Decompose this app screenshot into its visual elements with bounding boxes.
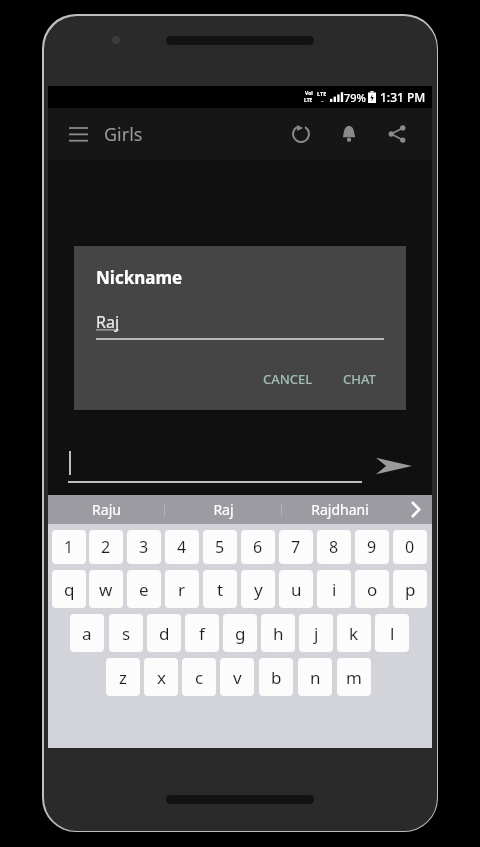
button[interactable]: CANCEL xyxy=(255,364,321,394)
button[interactable]: Raj xyxy=(165,495,281,524)
staticText: .. xyxy=(321,97,324,104)
staticText: Rajdhani xyxy=(311,500,369,519)
staticText: 1 xyxy=(64,536,74,558)
button[interactable]: Share xyxy=(378,115,416,153)
button[interactable]: y xyxy=(241,570,275,608)
button[interactable]: v xyxy=(220,658,254,696)
staticText: 1:31 PM xyxy=(380,89,426,105)
button[interactable]: b xyxy=(259,658,293,696)
button[interactable]: 3 xyxy=(127,530,161,564)
staticText: h xyxy=(273,622,284,645)
staticText: 0 xyxy=(405,536,415,558)
button[interactable]: p xyxy=(393,570,427,608)
staticText: 79% xyxy=(344,90,366,105)
button[interactable]: k xyxy=(337,614,371,652)
button[interactable]: x xyxy=(144,658,178,696)
staticText: Raj xyxy=(96,311,120,333)
button[interactable]: f xyxy=(185,614,219,652)
staticText: c xyxy=(195,666,204,689)
button[interactable]: Rajdhani xyxy=(282,495,398,524)
staticText: m xyxy=(346,666,362,689)
button[interactable]: Send xyxy=(372,449,416,483)
staticText: 6 xyxy=(253,536,263,558)
staticText: e xyxy=(139,578,149,601)
button[interactable]: e xyxy=(127,570,161,608)
button[interactable]: Notifications xyxy=(330,115,368,153)
button[interactable]: More suggestions xyxy=(398,495,432,524)
button[interactable]: d xyxy=(147,614,181,652)
button[interactable]: 4 xyxy=(165,530,199,564)
staticText: 4 xyxy=(177,536,187,558)
staticText: Girls xyxy=(104,122,143,147)
staticText: LTE xyxy=(317,90,327,97)
staticText: k xyxy=(349,622,359,645)
button[interactable]: 5 xyxy=(203,530,237,564)
button[interactable]: h xyxy=(261,614,295,652)
button[interactable]: Raju xyxy=(48,495,164,524)
staticText: Vol xyxy=(305,90,313,97)
button[interactable]: i xyxy=(317,570,351,608)
button[interactable]: o xyxy=(355,570,389,608)
button[interactable]: g xyxy=(223,614,257,652)
button[interactable]: z xyxy=(106,658,140,696)
button[interactable]: r xyxy=(165,570,199,608)
button[interactable]: Refresh xyxy=(282,115,320,153)
button[interactable]: m xyxy=(337,658,371,696)
button[interactable]: 1 xyxy=(52,530,86,564)
button[interactable]: u xyxy=(279,570,313,608)
button[interactable]: w xyxy=(89,570,123,608)
staticText: CHAT xyxy=(343,370,376,388)
staticText: l xyxy=(390,622,395,645)
staticText: t xyxy=(217,578,224,601)
staticText: a xyxy=(82,622,92,645)
staticText: Raju xyxy=(92,500,121,519)
button[interactable]: Menu xyxy=(60,116,96,152)
button[interactable]: s xyxy=(109,614,143,652)
staticText: 3 xyxy=(139,536,149,558)
button[interactable]: l xyxy=(375,614,409,652)
button[interactable]: 9 xyxy=(355,530,389,564)
button[interactable]: 6 xyxy=(241,530,275,564)
staticText: y xyxy=(254,578,263,601)
staticText: w xyxy=(99,578,113,601)
staticText: b xyxy=(271,666,282,689)
button[interactable]: n xyxy=(298,658,332,696)
staticText: 9 xyxy=(367,536,377,558)
staticText: Raj xyxy=(213,500,234,519)
staticText: v xyxy=(233,666,242,689)
staticText: CANCEL xyxy=(263,370,313,388)
button[interactable]: q xyxy=(52,570,86,608)
staticText: x xyxy=(157,666,166,689)
staticText: p xyxy=(405,578,416,601)
staticText: u xyxy=(291,578,302,601)
staticText: n xyxy=(310,666,321,689)
button[interactable]: j xyxy=(299,614,333,652)
staticText: i xyxy=(332,578,337,601)
staticText: o xyxy=(367,578,378,601)
staticText: LTE xyxy=(304,97,313,104)
staticText: 7 xyxy=(291,536,301,558)
button[interactable]: c xyxy=(182,658,216,696)
button[interactable] xyxy=(68,449,362,483)
button[interactable]: 2 xyxy=(89,530,123,564)
button[interactable]: CHAT xyxy=(335,364,384,394)
button[interactable]: 8 xyxy=(317,530,351,564)
staticText: q xyxy=(64,578,75,601)
staticText: 8 xyxy=(329,536,339,558)
button[interactable]: t xyxy=(203,570,237,608)
button[interactable]: 0 xyxy=(393,530,427,564)
staticText: f xyxy=(199,622,205,645)
staticText: 2 xyxy=(101,536,111,558)
staticText: Nickname xyxy=(96,266,183,289)
staticText: j xyxy=(314,622,319,645)
staticText: d xyxy=(159,622,170,645)
staticText: r xyxy=(178,578,186,601)
button[interactable]: 7 xyxy=(279,530,313,564)
staticText: 5 xyxy=(215,536,225,558)
staticText: z xyxy=(119,666,127,689)
button[interactable]: a xyxy=(70,614,104,652)
staticText: s xyxy=(122,622,131,645)
staticText: g xyxy=(235,622,246,645)
